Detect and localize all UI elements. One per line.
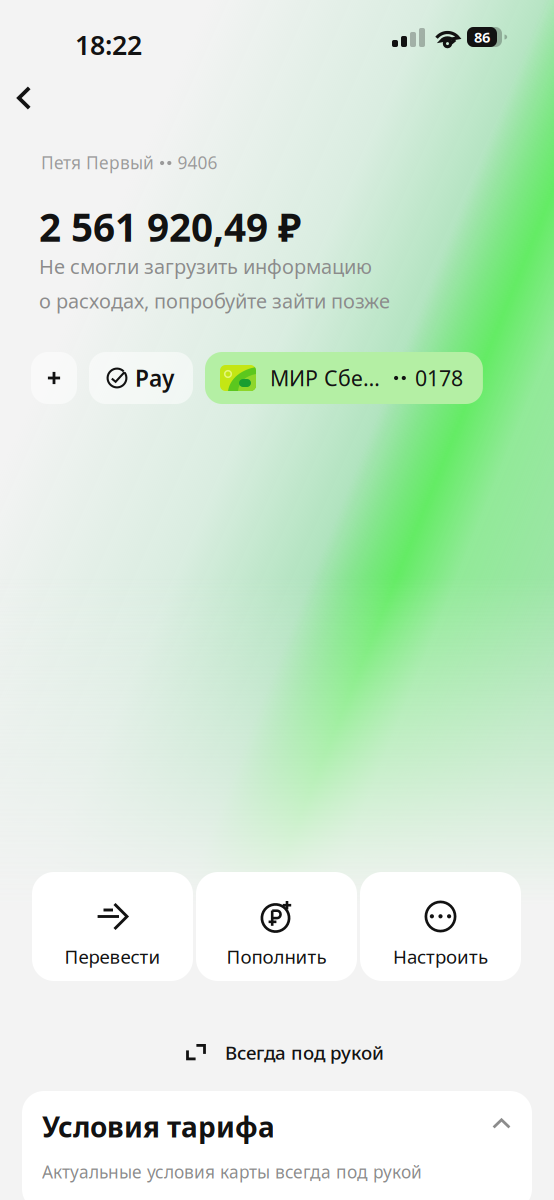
button[interactable]: МИР Сбе… <box>205 352 483 404</box>
staticText: 9406 <box>177 151 217 174</box>
staticText: МИР Сбе… <box>270 364 380 392</box>
staticText: Пополнить <box>226 944 326 969</box>
staticText: 18:22 <box>75 27 142 62</box>
staticText: 2 561 920,49 ₽ <box>39 201 301 252</box>
button[interactable]: Свернуть <box>479 1105 524 1142</box>
staticText: Не смогли загрузить информацию <box>39 253 372 280</box>
button[interactable]: Добавить карту <box>31 352 77 404</box>
staticText: Всегда под рукой <box>225 1040 384 1065</box>
staticText: 0178 <box>415 364 463 392</box>
button[interactable]: Пополнить <box>196 872 357 981</box>
button[interactable]: Настроить <box>360 872 521 981</box>
button[interactable]: Перевести <box>32 872 193 981</box>
staticText: Петя Первый <box>41 151 154 174</box>
staticText: Актуальные условия карты всегда под руко… <box>42 1160 422 1183</box>
button[interactable]: Назад <box>2 74 51 122</box>
staticText: Настроить <box>393 944 488 969</box>
staticText: Перевести <box>64 944 160 969</box>
button[interactable]: Pay <box>89 352 193 404</box>
staticText: Условия тарифа <box>42 1108 275 1145</box>
staticText: Pay <box>135 363 174 393</box>
staticText: 86 <box>474 27 490 47</box>
staticText: о расходах, попробуйте зайти позже <box>39 288 390 314</box>
